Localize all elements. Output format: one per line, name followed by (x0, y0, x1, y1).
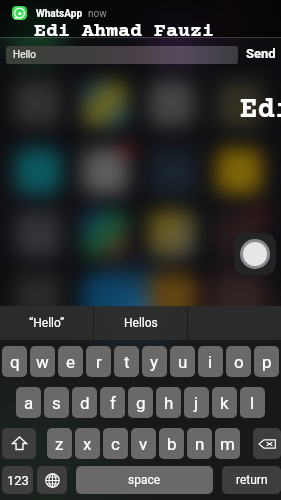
staticText: z (55, 434, 64, 454)
staticText: n (195, 434, 205, 454)
button[interactable]: Hellos (94, 306, 187, 340)
staticText: e (66, 352, 76, 372)
button[interactable]: Backspace (253, 428, 281, 459)
staticText: Hello (13, 49, 37, 61)
button[interactable]: f (100, 387, 125, 418)
staticText: p (262, 352, 272, 372)
button[interactable]: i (198, 346, 223, 377)
button[interactable]: m (215, 428, 240, 459)
button[interactable]: b (159, 428, 184, 459)
button[interactable]: Hello (6, 46, 238, 64)
staticText: b (167, 434, 177, 454)
staticText: 123 (7, 473, 29, 488)
staticText: now (88, 8, 107, 20)
button[interactable]: return (222, 466, 281, 494)
staticText: “Hello” (29, 316, 65, 330)
staticText: o (234, 352, 244, 372)
staticText: l (250, 393, 255, 413)
button[interactable]: x (75, 428, 100, 459)
staticText: x (83, 434, 92, 454)
staticText: v (139, 434, 148, 454)
staticText: WhatsApp (36, 8, 83, 20)
button[interactable]: d (72, 387, 97, 418)
button[interactable]: v (131, 428, 156, 459)
button[interactable]: t (114, 346, 139, 377)
button[interactable]: o (226, 346, 251, 377)
staticText: h (164, 393, 174, 413)
button[interactable]: u (170, 346, 195, 377)
staticText: r (96, 352, 102, 372)
button[interactable]: p (254, 346, 279, 377)
staticText: f (110, 393, 116, 413)
button[interactable]: y (142, 346, 167, 377)
button[interactable]: k (212, 387, 237, 418)
staticText: Send (246, 46, 276, 61)
button[interactable]: “Hello” (0, 306, 93, 340)
staticText: j (194, 393, 199, 413)
button[interactable]: 123 (2, 466, 33, 494)
button[interactable]: e (58, 346, 83, 377)
staticText: w (36, 352, 49, 372)
staticText: q (10, 352, 20, 372)
staticText: t (124, 352, 130, 372)
button[interactable]: s (44, 387, 69, 418)
button[interactable]: n (187, 428, 212, 459)
button[interactable]: q (2, 346, 27, 377)
staticText: y (150, 352, 159, 372)
staticText: k (220, 393, 229, 413)
staticText: Edi Ahmad Fauzi (34, 20, 214, 42)
button[interactable]: h (156, 387, 181, 418)
button[interactable]: AssistiveTouch (234, 233, 276, 275)
staticText: d (80, 393, 90, 413)
button[interactable]: space (76, 466, 213, 494)
staticText: g (136, 393, 146, 413)
button[interactable]: Send (242, 43, 280, 64)
button[interactable]: z (47, 428, 72, 459)
button[interactable]: a (16, 387, 41, 418)
staticText: a (24, 393, 34, 413)
staticText: c (111, 434, 120, 454)
staticText: space (128, 473, 161, 487)
staticText: s (52, 393, 61, 413)
button[interactable]: Emoji keyboard (37, 466, 67, 494)
button[interactable]: r (86, 346, 111, 377)
staticText: u (178, 352, 188, 372)
button[interactable]: Shift (2, 428, 36, 459)
button[interactable]: g (128, 387, 153, 418)
staticText: m (220, 434, 235, 454)
staticText: Hellos (124, 316, 158, 330)
staticText: i (208, 352, 213, 372)
button[interactable]: j (184, 387, 209, 418)
button[interactable]: w (30, 346, 55, 377)
staticText: return (236, 473, 268, 487)
button[interactable]: c (103, 428, 128, 459)
button[interactable]: l (240, 387, 265, 418)
staticText: Edi (240, 94, 281, 127)
